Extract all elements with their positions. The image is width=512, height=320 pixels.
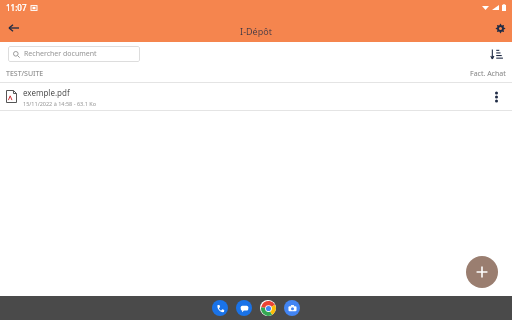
button[interactable]: Messages	[236, 300, 252, 316]
staticText: exemple.pdf	[23, 87, 70, 98]
button[interactable]: Rechercher document	[8, 46, 140, 62]
staticText: TEST/SUITE	[6, 69, 44, 79]
button[interactable]: Téléphone	[212, 300, 228, 316]
staticText: 15/11/2022 à 14:58 - 63.1 Ko	[23, 100, 96, 107]
button[interactable]: Paramètres	[490, 18, 510, 38]
button[interactable]: Chrome	[260, 300, 276, 316]
button[interactable]: Plus d'options	[486, 87, 506, 107]
staticText: Fact. Achat	[470, 69, 506, 79]
button[interactable]: Ajouter	[466, 256, 498, 288]
button[interactable]: Appareil photo	[284, 300, 300, 316]
button[interactable]: Trier	[486, 44, 506, 64]
staticText: I-Dépôt	[240, 25, 272, 37]
button[interactable]: exemple.pdf	[0, 83, 512, 110]
button[interactable]: Retour	[4, 18, 24, 38]
staticText: Rechercher document	[24, 49, 97, 59]
staticText: 11:07	[6, 2, 27, 13]
